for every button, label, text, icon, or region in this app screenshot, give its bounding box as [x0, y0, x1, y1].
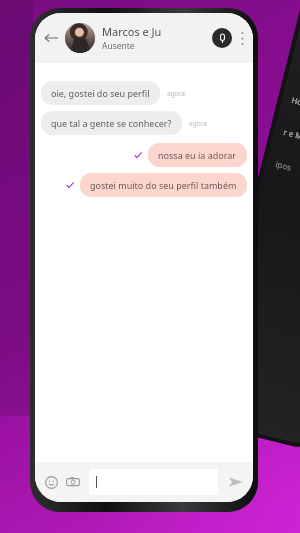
- staticText: Marcos e Ju: [102, 24, 162, 39]
- staticText: gostei muito do seu perfil também: [90, 179, 237, 191]
- button[interactable]: que tal a gente se conhecer?: [41, 111, 182, 135]
- staticText: que tal a gente se conhecer?: [51, 117, 172, 129]
- button[interactable]: oie, gostei do seu perfil: [41, 81, 160, 105]
- staticText: nossa eu ia adorar: [158, 149, 237, 161]
- staticText: agora: [167, 89, 185, 98]
- button[interactable]: More options: [237, 28, 247, 48]
- button[interactable]: nossa eu ia adorar: [148, 143, 247, 167]
- button[interactable]: Attach: [212, 28, 232, 48]
- staticText: Homem e: [291, 94, 300, 114]
- staticText: r e Mulher: [283, 126, 300, 146]
- button[interactable]: Emoji: [42, 473, 60, 491]
- button[interactable]: Camera: [64, 473, 82, 491]
- staticText: ipos: [275, 158, 293, 173]
- button[interactable]: Send: [226, 472, 246, 492]
- button[interactable]: gostei muito do seu perfil também: [80, 173, 247, 197]
- button[interactable]: [89, 469, 218, 495]
- staticText: agora: [189, 119, 207, 128]
- button[interactable]: Profile photo: [65, 23, 95, 53]
- button[interactable]: Back: [41, 28, 61, 48]
- staticText: oie, gostei do seu perfil: [51, 87, 150, 99]
- staticText: Ausente: [102, 40, 135, 52]
